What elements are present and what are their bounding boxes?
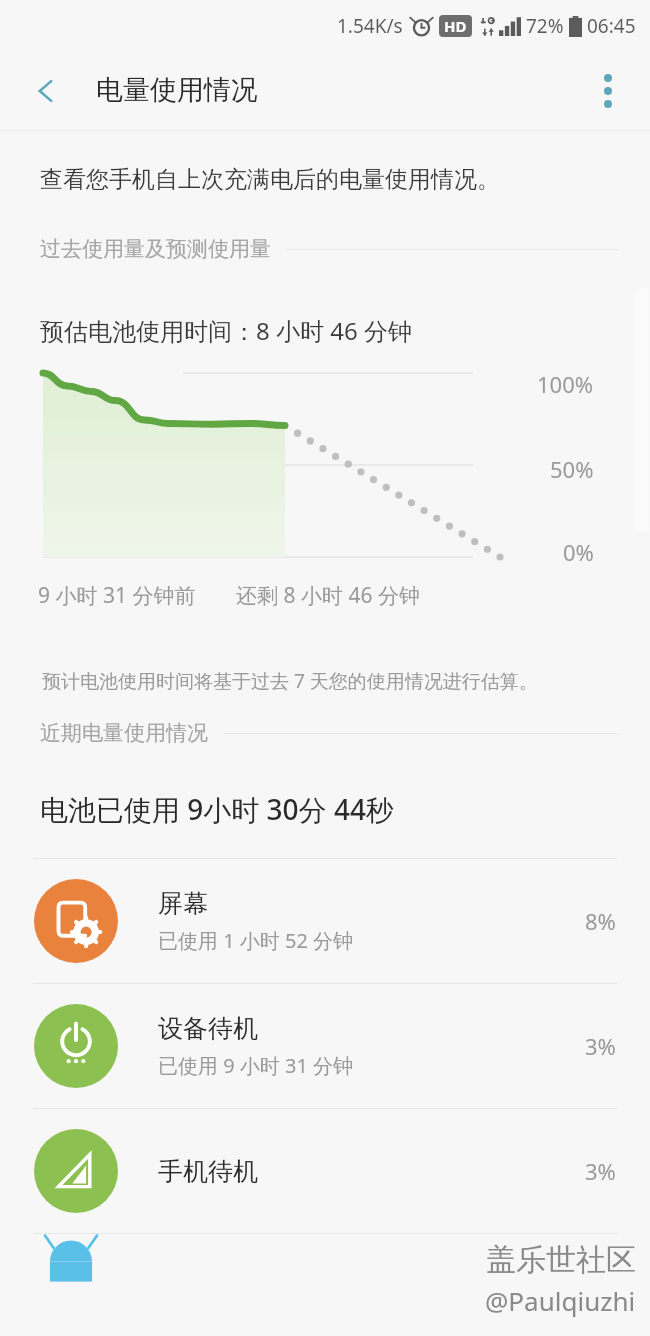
staticText: @Paulqiuzhi	[485, 1283, 636, 1318]
staticText: 72%	[526, 13, 564, 39]
staticText: 预计电池使用时间将基于过去 7 天您的使用情况进行估算。	[42, 668, 538, 694]
staticText: 1.54K/s	[337, 13, 403, 39]
button[interactable]: More options	[580, 63, 636, 119]
staticText: 近期电量使用情况	[40, 720, 208, 746]
staticText: 3%	[585, 1031, 616, 1061]
button[interactable]: Back	[18, 63, 74, 119]
staticText: 8%	[585, 906, 616, 936]
staticText: 设备待机	[158, 1013, 258, 1044]
staticText: 已使用 1 小时 52 分钟	[158, 927, 354, 954]
staticText: 已使用 9 小时 31 分钟	[158, 1052, 354, 1079]
staticText: 50%	[550, 454, 594, 484]
staticText: 预估电池使用时间：8 小时 46 分钟	[40, 314, 412, 347]
staticText: 电池已使用 9小时 30分 44秒	[40, 790, 394, 828]
staticText: 盖乐世社区	[486, 1241, 636, 1279]
staticText: 06:45	[587, 13, 636, 39]
staticText: 查看您手机自上次充满电后的电量使用情况。	[40, 165, 500, 194]
staticText: 3%	[585, 1156, 616, 1186]
staticText: 手机待机	[158, 1156, 258, 1187]
staticText: 还剩 8 小时 46 分钟	[236, 581, 420, 610]
staticText: 9 小时 31 分钟前	[38, 581, 196, 610]
staticText: 100%	[537, 369, 594, 399]
button[interactable]: 手机待机	[0, 1109, 650, 1233]
staticText: 屏幕	[158, 888, 208, 919]
staticText: 0%	[563, 537, 594, 567]
button[interactable]: 设备待机	[0, 984, 650, 1108]
staticText: 电量使用情况	[96, 73, 258, 107]
staticText: 过去使用量及预测使用量	[40, 236, 271, 262]
button[interactable]: 屏幕	[0, 859, 650, 983]
staticText: HD	[444, 16, 467, 36]
